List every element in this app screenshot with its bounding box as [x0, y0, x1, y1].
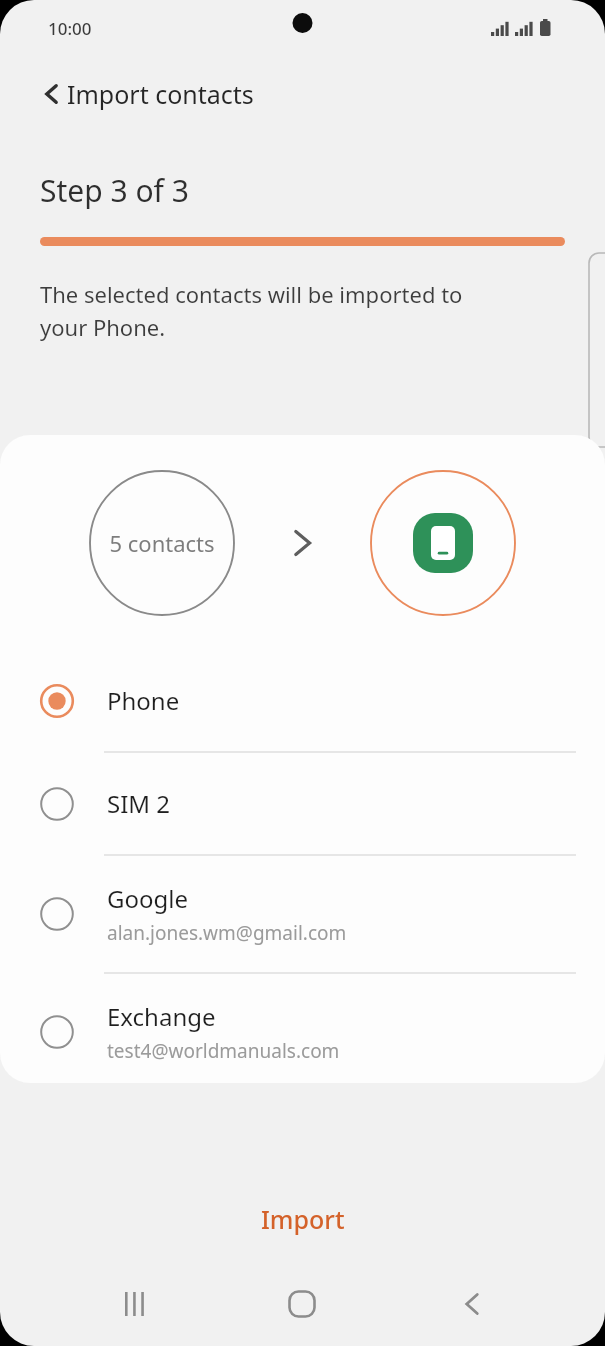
staticText: Step 3 of 3 [40, 170, 189, 211]
staticText: SIM 2 [107, 787, 171, 820]
staticText: Exchange [107, 1000, 216, 1033]
staticText: Import [261, 1202, 345, 1236]
button[interactable]: Home [274, 1276, 330, 1332]
button[interactable]: Import [0, 1183, 605, 1255]
staticText: The selected contacts will be imported t… [40, 279, 463, 342]
staticText: Phone [107, 684, 180, 717]
staticText: 5 contacts [109, 528, 215, 558]
button[interactable]: Exchange [0, 974, 605, 1083]
button[interactable]: Phone [0, 650, 605, 751]
staticText: Google [107, 882, 188, 915]
staticText: test4@worldmanuals.com [107, 1038, 340, 1064]
button[interactable]: Back [28, 70, 76, 118]
button[interactable]: Back [444, 1276, 500, 1332]
button[interactable]: Recent apps [108, 1276, 164, 1332]
staticText: alan.jones.wm@gmail.com [107, 920, 347, 946]
button[interactable]: SIM 2 [0, 753, 605, 854]
staticText: 10:00 [48, 17, 92, 40]
button[interactable]: Google [0, 856, 605, 972]
staticText: Import contacts [67, 77, 254, 111]
